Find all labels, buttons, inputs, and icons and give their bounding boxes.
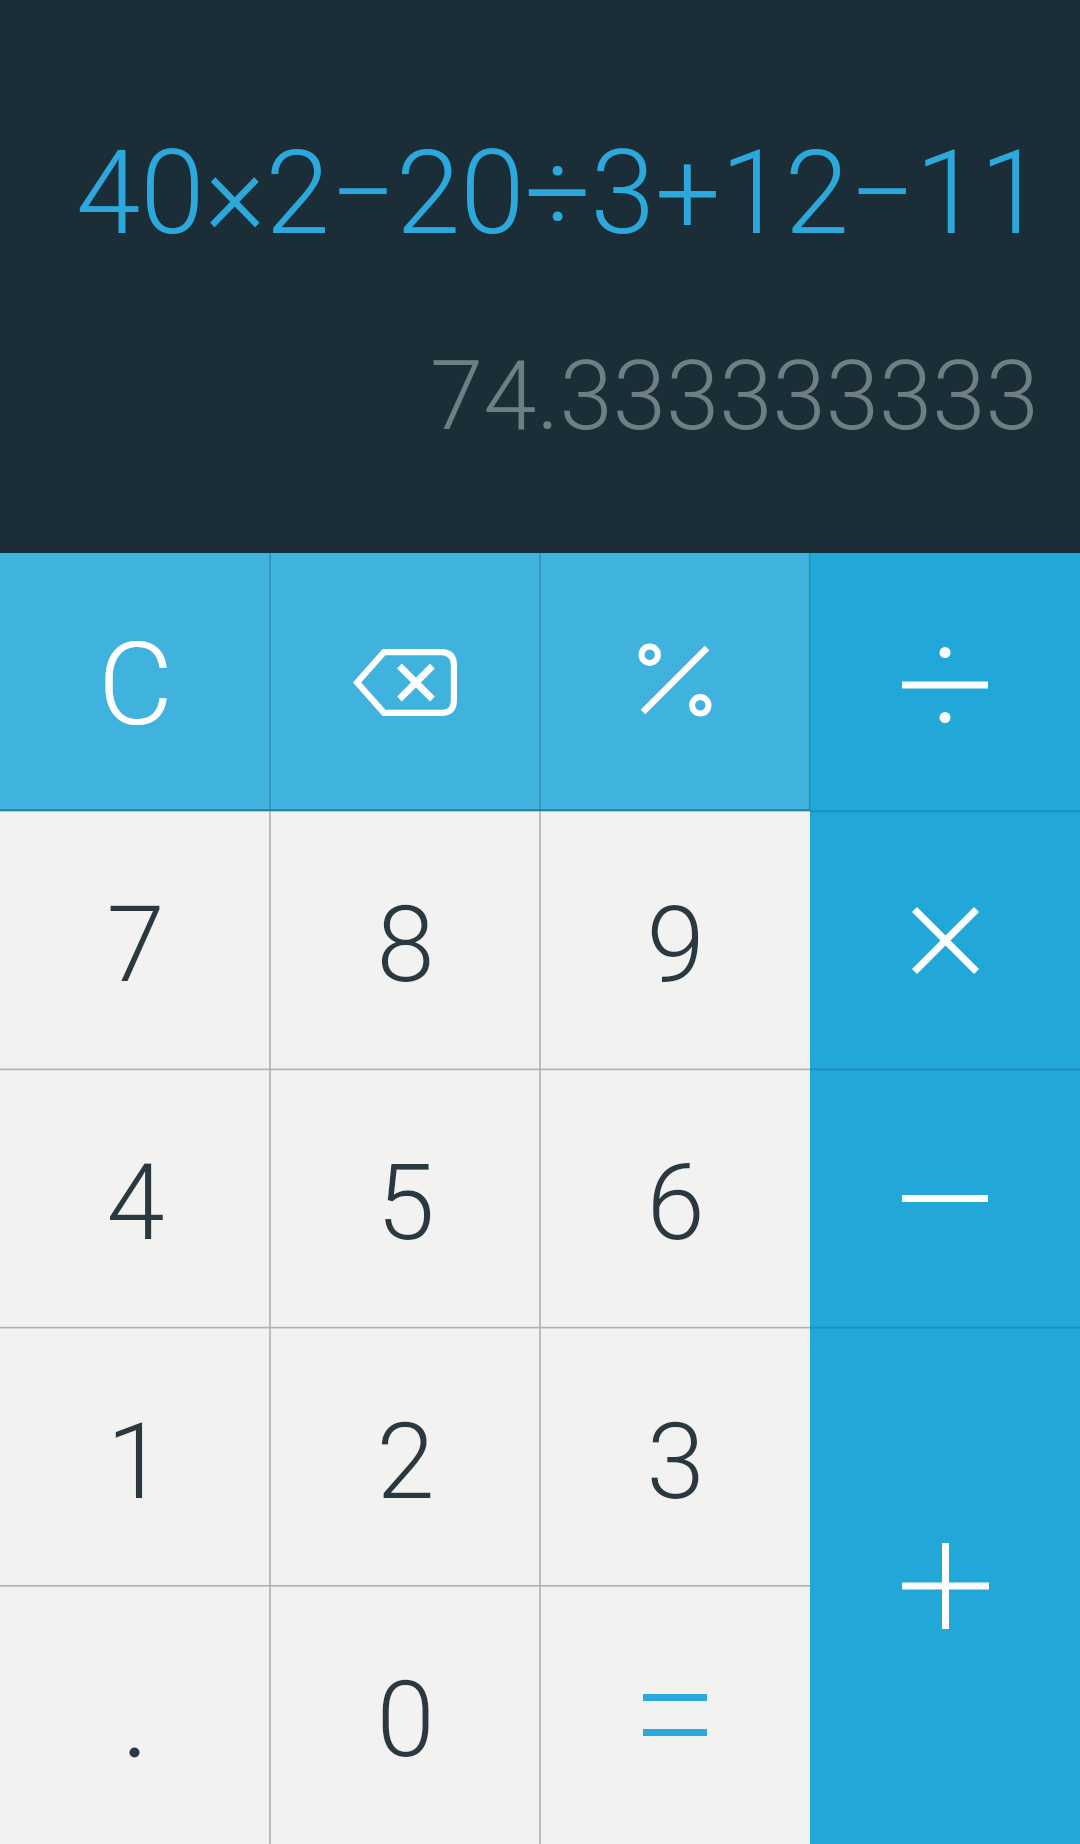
staticText: 1 [106, 1401, 165, 1524]
staticText: 8 [376, 884, 435, 1007]
button[interactable]: Divide [810, 553, 1080, 811]
button[interactable]: 9 [540, 811, 810, 1069]
button[interactable]: Percent [540, 553, 810, 811]
button[interactable]: 0 [270, 1586, 540, 1844]
staticText: 74.333333333 [430, 340, 1039, 453]
staticText: 7 [106, 884, 165, 1007]
staticText: 40×2−20÷3+12−11 [76, 125, 1044, 261]
button[interactable]: Minus [810, 1069, 1080, 1327]
button[interactable]: 1 [0, 1328, 270, 1586]
staticText: 3 [646, 1401, 705, 1524]
button[interactable]: 3 [540, 1328, 810, 1586]
button[interactable]: Multiply [810, 811, 1080, 1069]
staticText: 2 [376, 1401, 435, 1524]
button[interactable]: 5 [270, 1069, 540, 1327]
button[interactable]: 6 [540, 1069, 810, 1327]
button[interactable]: Equals [540, 1586, 810, 1844]
staticText: 0 [376, 1659, 435, 1782]
button[interactable]: 4 [0, 1069, 270, 1327]
button[interactable]: Backspace [270, 553, 540, 811]
button[interactable]: 7 [0, 811, 270, 1069]
button[interactable]: Plus [810, 1328, 1080, 1844]
button[interactable]: 2 [270, 1328, 540, 1586]
button[interactable]: 8 [270, 811, 540, 1069]
button[interactable]: C [0, 553, 270, 811]
staticText: 5 [376, 1142, 435, 1265]
button[interactable]: Decimal point [0, 1586, 270, 1844]
staticText: 6 [646, 1142, 705, 1265]
staticText: 9 [646, 884, 705, 1007]
staticText: C [98, 617, 173, 752]
staticText: 4 [106, 1142, 165, 1265]
